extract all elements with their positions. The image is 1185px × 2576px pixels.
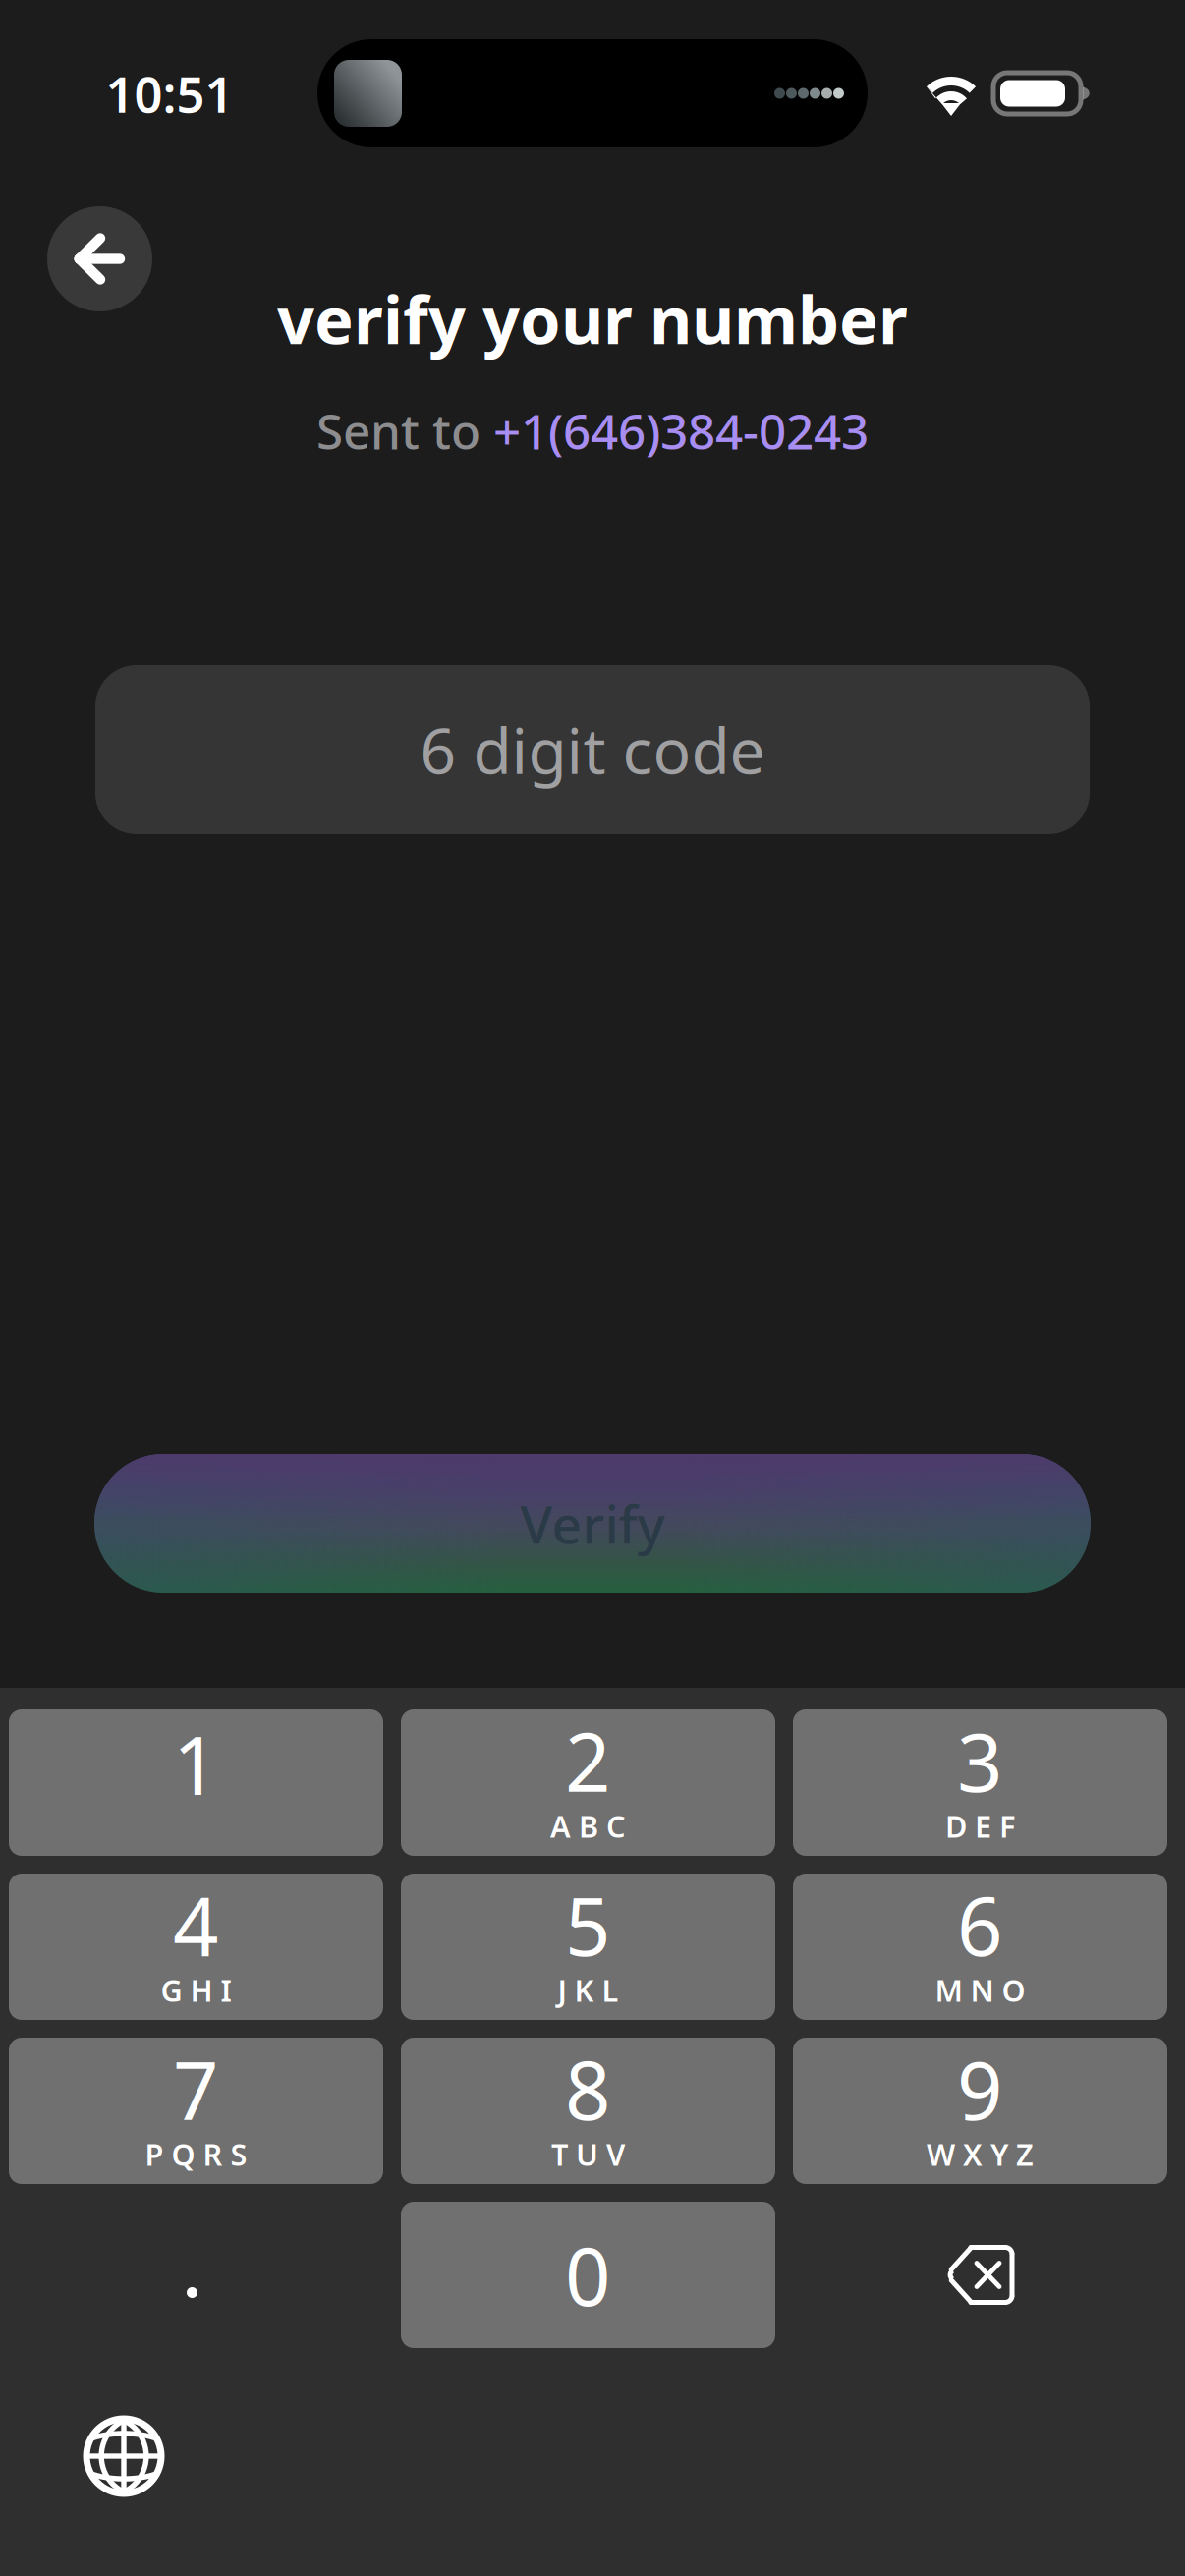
staticText: W X Y Z — [927, 2134, 1034, 2174]
button[interactable]: Back — [47, 206, 152, 311]
staticText: +1(646)384-0243 — [493, 398, 869, 463]
staticText: 5 — [565, 1872, 611, 1978]
staticText: 3 — [957, 1708, 1003, 1814]
button[interactable]: 4 — [9, 1874, 383, 2020]
staticText: verify your number — [277, 275, 908, 362]
staticText: M N O — [935, 1970, 1025, 2010]
staticText: A B C — [550, 1806, 626, 1846]
button[interactable]: Delete — [793, 2202, 1167, 2348]
button[interactable]: 0 — [401, 2202, 775, 2348]
button[interactable]: 1 — [9, 1709, 383, 1856]
button[interactable]: 7 — [9, 2038, 383, 2184]
staticText: 6 digit code — [420, 708, 765, 791]
staticText: 10:51 — [106, 60, 233, 126]
button[interactable]: 3 — [793, 1709, 1167, 1856]
button[interactable]: Change keyboard — [85, 2417, 163, 2495]
staticText: P Q R S — [145, 2134, 247, 2174]
button[interactable]: 2 — [401, 1709, 775, 1856]
staticText: T U V — [551, 2134, 625, 2174]
staticText: 0 — [565, 2222, 611, 2328]
staticText: J K L — [558, 1970, 619, 2010]
staticText: Sent to — [316, 398, 493, 463]
staticText: Verify — [520, 1489, 665, 1558]
button[interactable]: 6 digit code — [95, 665, 1090, 834]
staticText: G H I — [161, 1970, 231, 2010]
button[interactable]: Verify — [94, 1454, 1091, 1593]
button[interactable]: 8 — [401, 2038, 775, 2184]
staticText: 9 — [957, 2036, 1003, 2142]
staticText: 2 — [565, 1708, 611, 1814]
button[interactable]: 9 — [793, 2038, 1167, 2184]
staticText: 8 — [565, 2036, 611, 2142]
staticText: 1 — [173, 1711, 219, 1817]
button[interactable]: 6 — [793, 1874, 1167, 2020]
staticText: D E F — [945, 1806, 1015, 1846]
staticText: 6 — [957, 1872, 1003, 1978]
button[interactable]: 5 — [401, 1874, 775, 2020]
staticText: 4 — [173, 1872, 219, 1978]
button[interactable]: Period — [9, 2202, 383, 2348]
staticText: 7 — [173, 2036, 219, 2142]
